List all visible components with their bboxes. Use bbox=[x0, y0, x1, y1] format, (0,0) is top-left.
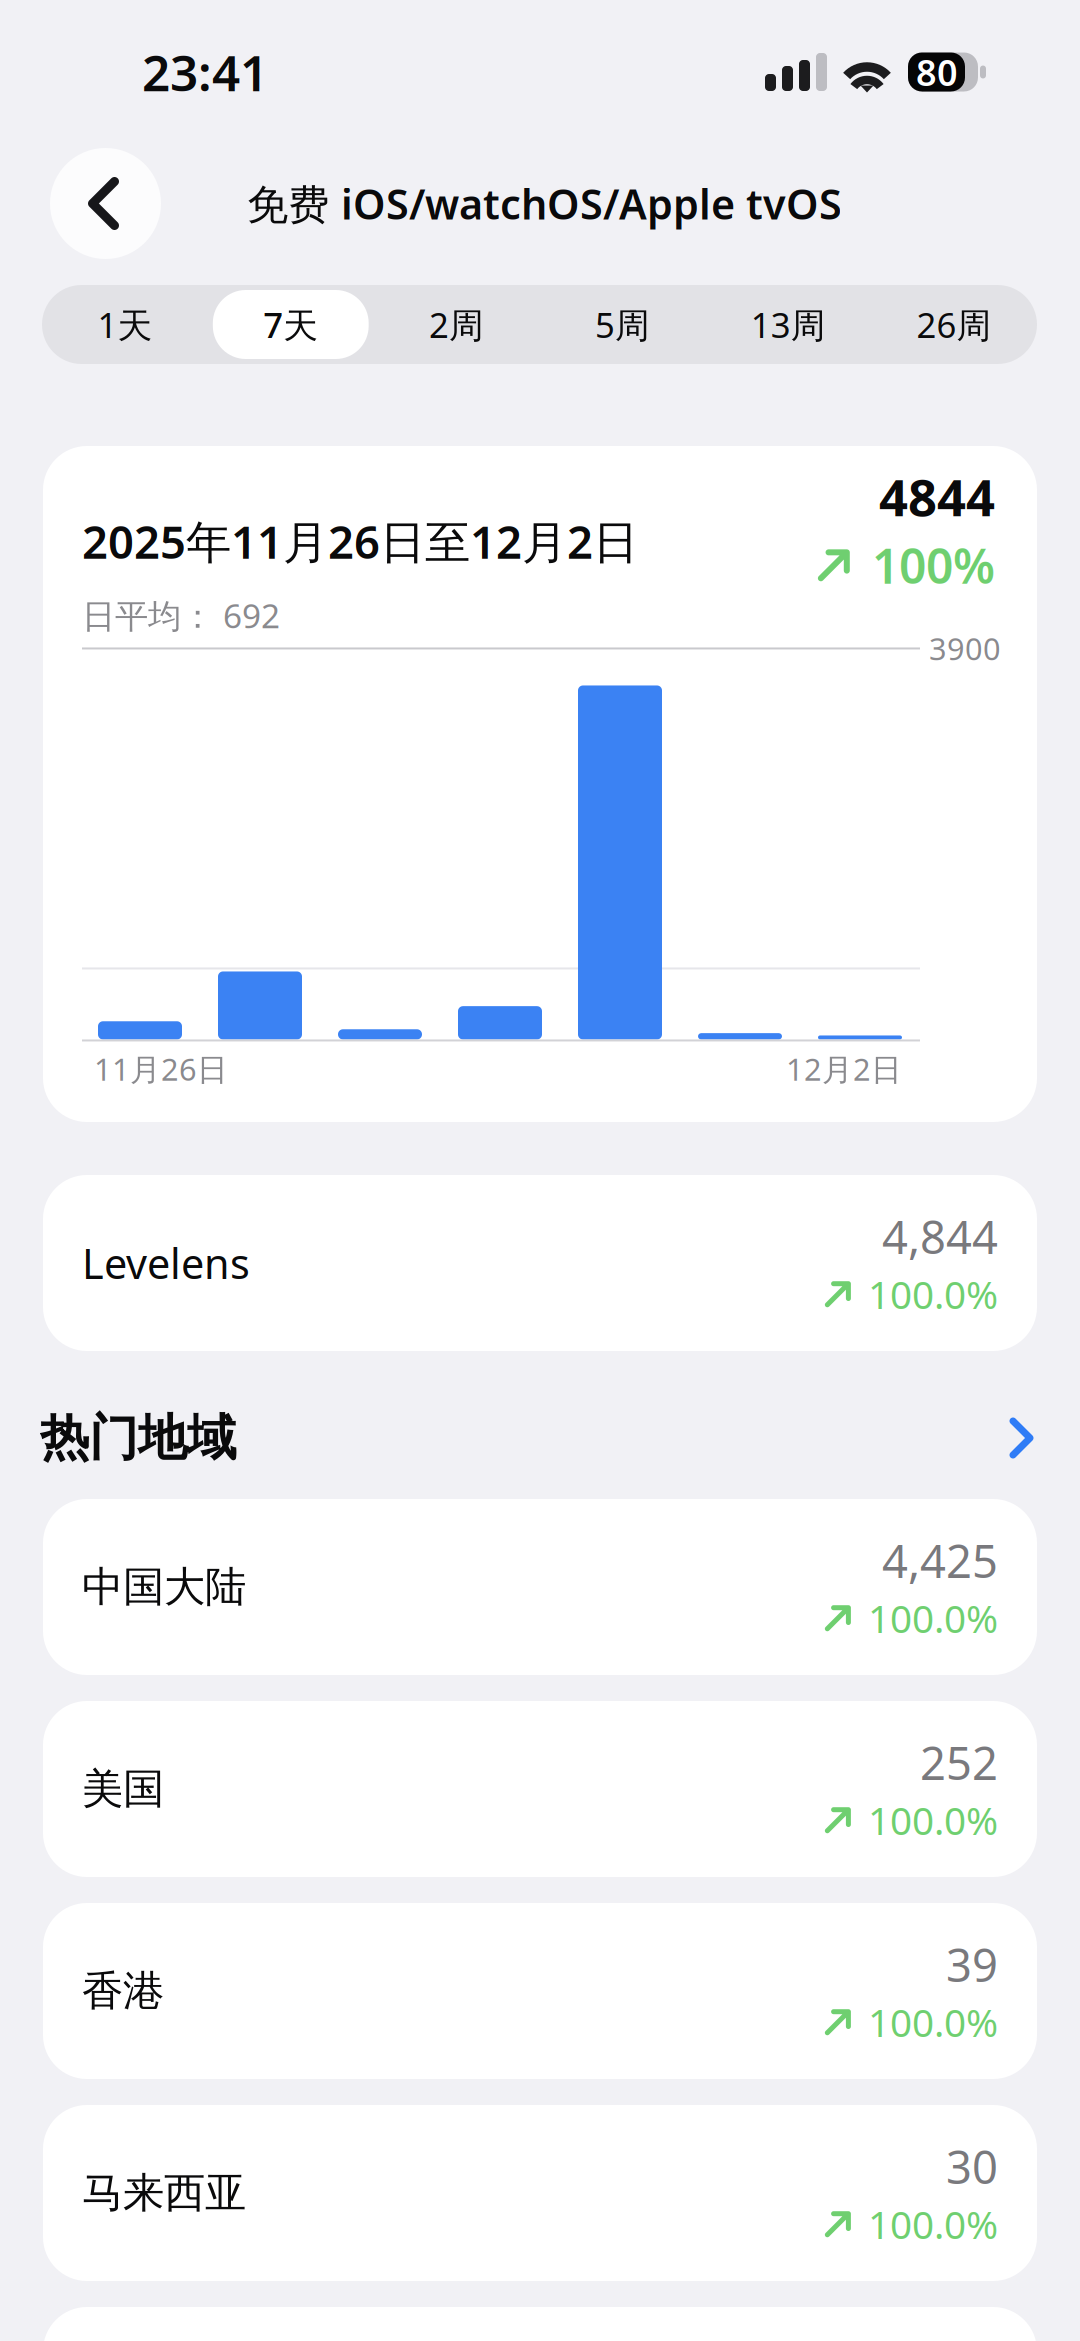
staticText: 2周 bbox=[429, 301, 484, 347]
staticText: 中国大陆 bbox=[82, 1562, 246, 1612]
staticText: 23:41 bbox=[142, 39, 268, 105]
button[interactable]: 2周 bbox=[374, 285, 539, 364]
staticText: 4,425 bbox=[882, 1530, 998, 1590]
staticText: 2025年11月26日至12月2日 bbox=[82, 511, 638, 571]
button[interactable]: 中国大陆 bbox=[43, 1499, 1037, 1675]
staticText: 100.0% bbox=[868, 2198, 998, 2250]
button[interactable]: Levelens bbox=[43, 1175, 1037, 1351]
staticText: 80 bbox=[916, 48, 958, 96]
staticText: 香港 bbox=[82, 1966, 164, 2016]
button[interactable]: 13周 bbox=[705, 285, 871, 364]
staticText: 12月2日 bbox=[786, 1048, 902, 1089]
staticText: 30 bbox=[946, 2136, 998, 2196]
staticText: 252 bbox=[920, 1732, 998, 1792]
staticText: 美国 bbox=[82, 1764, 164, 1814]
staticText: 4,844 bbox=[882, 1206, 998, 1266]
staticText: 7天 bbox=[263, 301, 318, 347]
button[interactable]: 香港 bbox=[43, 1903, 1037, 2079]
staticText: 4844 bbox=[879, 463, 995, 530]
button[interactable]: 马来西亚 bbox=[43, 2105, 1037, 2281]
button[interactable]: 26周 bbox=[871, 285, 1037, 364]
staticText: 100% bbox=[872, 533, 995, 597]
staticText: Levelens bbox=[82, 1236, 250, 1290]
staticText: 5周 bbox=[595, 301, 650, 347]
button[interactable]: Back bbox=[50, 148, 161, 259]
staticText: 1天 bbox=[97, 301, 152, 347]
staticText: 3900 bbox=[929, 628, 1001, 669]
staticText: 100.0% bbox=[868, 1268, 998, 1320]
staticText: 26周 bbox=[917, 301, 992, 347]
staticText: 11月26日 bbox=[94, 1048, 228, 1089]
button[interactable]: 7天 bbox=[208, 285, 374, 364]
staticText: 13周 bbox=[751, 301, 826, 347]
staticText: 马来西亚 bbox=[82, 2168, 246, 2218]
button[interactable]: 1天 bbox=[42, 285, 208, 364]
button[interactable]: 热门地域 bbox=[1008, 1416, 1035, 1460]
staticText: 日平均： 692 bbox=[82, 593, 280, 637]
staticText: 免费 iOS/watchOS/Apple tvOS bbox=[247, 176, 842, 231]
button[interactable]: 美国 bbox=[43, 1701, 1037, 1877]
button[interactable]: 5周 bbox=[539, 285, 705, 364]
staticText: 100.0% bbox=[868, 1996, 998, 2048]
staticText: 100.0% bbox=[868, 1794, 998, 1846]
staticText: 39 bbox=[946, 1934, 998, 1994]
staticText: 100.0% bbox=[868, 1592, 998, 1644]
staticText: 热门地域 bbox=[40, 1408, 236, 1468]
